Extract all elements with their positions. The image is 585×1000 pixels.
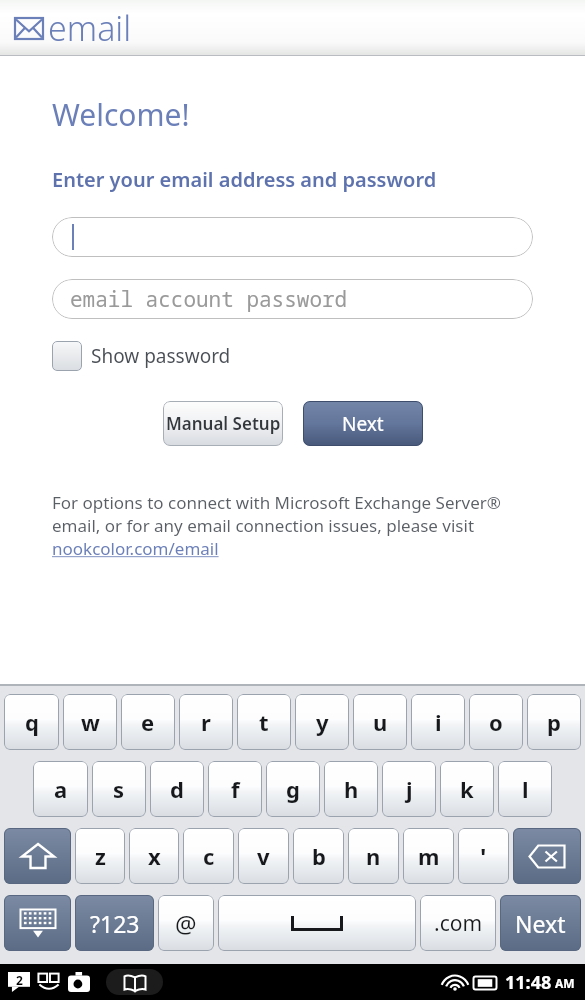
button[interactable]: Show password — [52, 341, 231, 371]
button[interactable]: i — [411, 694, 465, 750]
staticText: p — [547, 707, 561, 737]
staticText: x — [148, 841, 161, 871]
button[interactable]: o — [469, 694, 523, 750]
staticText: Welcome! — [52, 94, 190, 135]
other: Battery — [472, 975, 498, 991]
button[interactable]: Backspace — [513, 828, 581, 884]
button[interactable]: Library — [106, 969, 163, 995]
button[interactable]: ' — [458, 828, 509, 884]
staticText: @ — [175, 907, 197, 940]
staticText: t — [259, 707, 269, 737]
button[interactable]: h — [324, 761, 378, 817]
staticText: r — [201, 707, 211, 737]
button[interactable]: e — [121, 694, 175, 750]
button[interactable]: b — [293, 828, 344, 884]
staticText: Manual Setup — [166, 412, 281, 435]
staticText: 11:48 — [505, 970, 552, 995]
staticText: g — [286, 774, 300, 804]
staticText: ' — [480, 840, 487, 873]
staticText: f — [231, 774, 240, 804]
button[interactable]: Manual Setup — [163, 401, 283, 446]
button[interactable]: f — [208, 761, 262, 817]
staticText: v — [257, 841, 270, 871]
staticText: o — [489, 707, 503, 737]
staticText: d — [170, 774, 184, 804]
button[interactable]: ?123 — [75, 895, 154, 951]
button[interactable]: z — [75, 828, 125, 884]
button[interactable]: Hide keyboard — [4, 895, 71, 951]
staticText: Show password — [91, 343, 231, 369]
staticText: l — [522, 774, 529, 804]
button[interactable]: Space — [218, 895, 416, 951]
button[interactable]: Shift — [4, 828, 71, 884]
button[interactable]: s — [92, 761, 146, 817]
button[interactable]: p — [527, 694, 581, 750]
staticText: email, or for any email connection issue… — [52, 514, 475, 537]
button[interactable]: .com — [420, 895, 496, 951]
staticText: m — [418, 841, 440, 871]
button[interactable]: r — [179, 694, 233, 750]
staticText: AM — [555, 975, 575, 991]
staticText: s — [113, 774, 125, 804]
staticText: q — [25, 707, 39, 737]
button[interactable]: 2 notifications — [8, 972, 30, 992]
staticText: ?123 — [90, 908, 140, 939]
staticText: b — [312, 841, 326, 871]
button[interactable]: l — [498, 761, 552, 817]
other: Wi-Fi — [444, 974, 466, 991]
button[interactable]: q — [4, 694, 59, 750]
staticText: Next — [515, 908, 566, 939]
staticText: k — [460, 774, 474, 804]
staticText: h — [344, 774, 359, 804]
button[interactable]: Messages — [37, 972, 61, 992]
button[interactable]: a — [33, 761, 88, 817]
button[interactable]: m — [403, 828, 454, 884]
button[interactable]: Next — [500, 895, 581, 951]
staticText: w — [81, 707, 100, 737]
staticText: i — [435, 707, 442, 737]
staticText: For options to connect with Microsoft Ex… — [52, 491, 501, 514]
button[interactable]: u — [353, 694, 407, 750]
button[interactable]: email account password — [52, 279, 533, 319]
staticText: c — [203, 841, 215, 871]
button[interactable]: Next — [303, 401, 423, 446]
staticText: email — [48, 5, 132, 51]
button[interactable]: Camera — [68, 972, 90, 992]
button[interactable]: x — [129, 828, 179, 884]
button[interactable]: nookcolor.com/email — [52, 537, 219, 560]
staticText: j — [406, 774, 413, 804]
button[interactable]: c — [183, 828, 234, 884]
button[interactable]: j — [382, 761, 436, 817]
button[interactable]: d — [150, 761, 204, 817]
button[interactable]: y — [295, 694, 349, 750]
button[interactable]: v — [238, 828, 289, 884]
staticText: Next — [342, 411, 384, 437]
staticText: email account password — [70, 285, 348, 314]
staticText: a — [54, 774, 68, 804]
staticText: u — [373, 707, 388, 737]
button[interactable]: w — [63, 694, 117, 750]
button[interactable]: @ — [158, 895, 214, 951]
button[interactable]: n — [348, 828, 399, 884]
staticText: z — [95, 841, 106, 871]
staticText: e — [141, 707, 155, 737]
button[interactable]: t — [237, 694, 291, 750]
button[interactable] — [52, 217, 533, 257]
staticText: y — [316, 707, 329, 737]
button[interactable]: k — [440, 761, 494, 817]
staticText: .com — [434, 909, 483, 938]
staticText: 2 — [16, 972, 23, 988]
staticText: n — [366, 841, 381, 871]
staticText: Enter your email address and password — [52, 166, 437, 193]
button[interactable]: g — [266, 761, 320, 817]
